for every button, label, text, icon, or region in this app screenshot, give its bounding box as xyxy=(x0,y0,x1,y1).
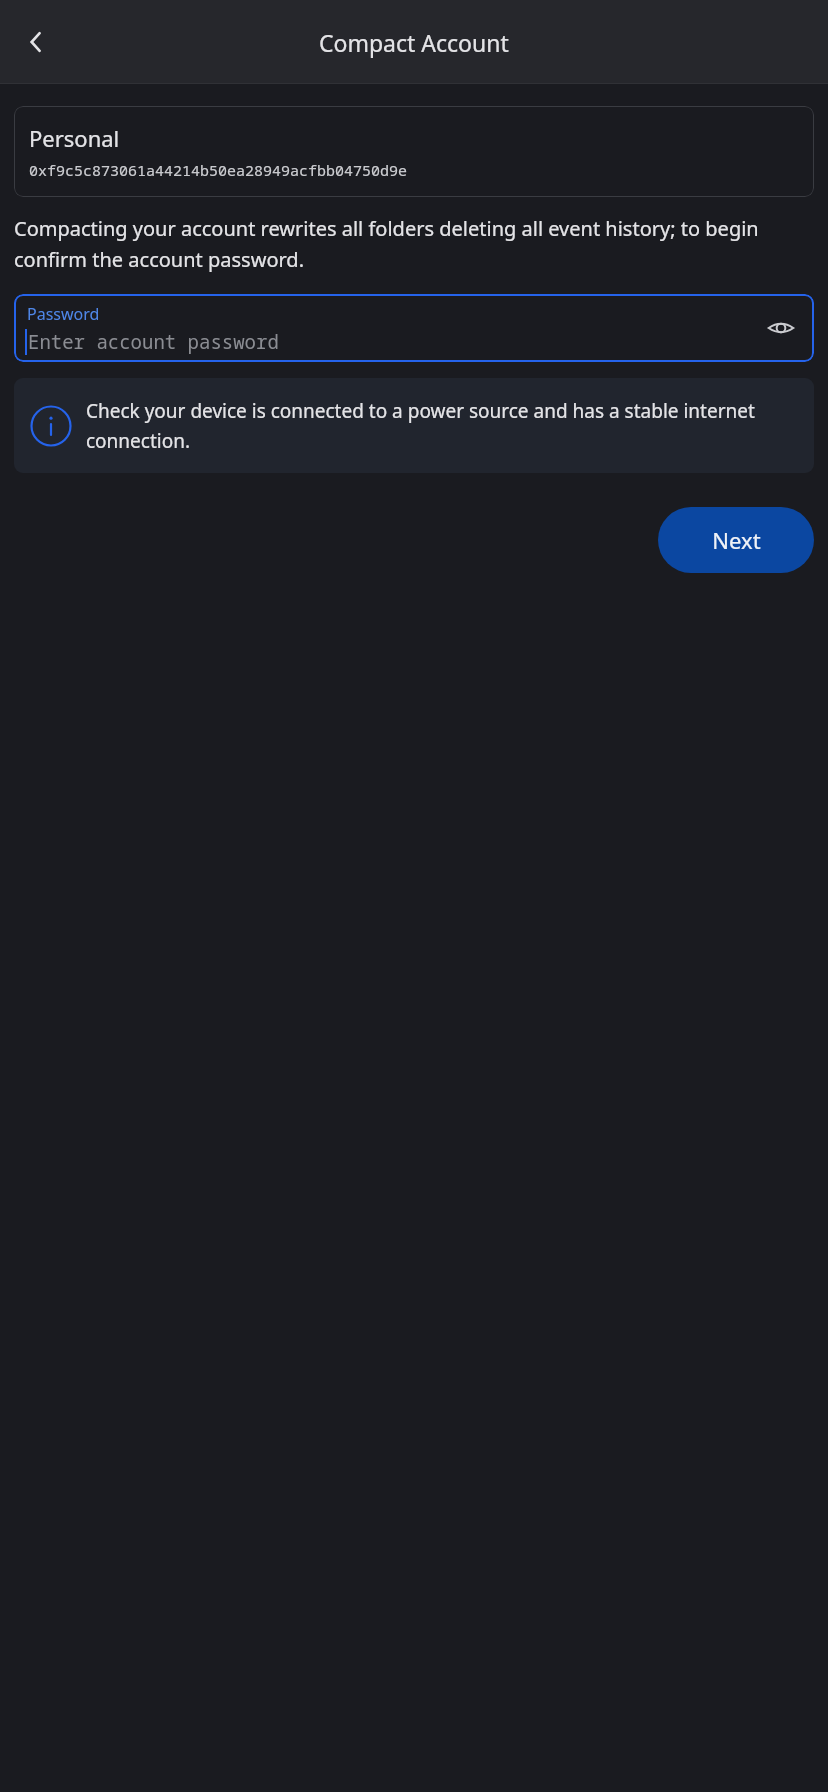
staticText: Password xyxy=(27,303,100,325)
staticText: 0xf9c5c873061a44214b50ea28949acfbb04750d… xyxy=(29,160,408,180)
button[interactable]: Next xyxy=(658,507,814,573)
staticText: Enter account password xyxy=(28,329,279,355)
staticText: Next xyxy=(712,525,761,555)
staticText: Compact Account xyxy=(319,27,509,58)
staticText: Compacting your account rewrites all fol… xyxy=(14,215,814,272)
staticText: Personal xyxy=(29,123,120,153)
staticText: Check your device is connected to a powe… xyxy=(86,398,798,453)
button[interactable]: Password xyxy=(14,294,814,362)
button[interactable]: Check your device is connected to a powe… xyxy=(14,378,814,473)
button[interactable]: Show password xyxy=(760,307,802,349)
button[interactable]: Personal xyxy=(14,106,814,197)
button[interactable]: Back xyxy=(10,16,62,68)
